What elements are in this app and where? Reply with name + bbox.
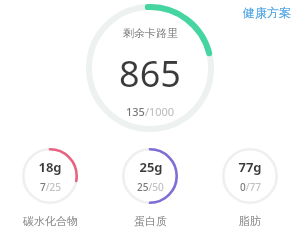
button[interactable]: 蛋白质 [100, 148, 200, 228]
staticText: 865 [119, 49, 181, 98]
button[interactable]: 剩余卡路里 [86, 4, 214, 132]
staticText: 135/1000 [126, 104, 175, 119]
button[interactable]: 健康方案 [239, 2, 295, 23]
staticText: 碳水化合物 [23, 214, 78, 228]
staticText: 25g [139, 158, 163, 176]
staticText: 18g [38, 158, 62, 176]
button[interactable]: 碳水化合物 [0, 148, 100, 228]
staticText: 77g [238, 158, 262, 176]
staticText: 剩余卡路里 [123, 26, 178, 40]
staticText: 蛋白质 [134, 214, 167, 228]
staticText: 7/25 [40, 180, 61, 194]
staticText: 脂肪 [239, 214, 261, 228]
staticText: 0/77 [240, 180, 261, 194]
staticText: 健康方案 [243, 5, 291, 20]
button[interactable]: 脂肪 [200, 148, 300, 228]
staticText: 25/50 [137, 180, 164, 194]
